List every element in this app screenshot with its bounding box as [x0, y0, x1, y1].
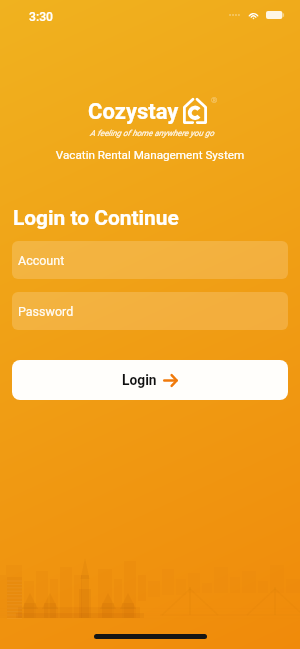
staticText: Login to Continue — [13, 206, 179, 230]
button[interactable]: Login — [12, 360, 288, 400]
staticText: Vacatin Rental Management System — [0, 148, 300, 162]
staticText: Password — [18, 304, 74, 319]
staticText: ® — [211, 96, 218, 105]
button[interactable]: Account — [12, 241, 288, 279]
staticText: Cozystay — [88, 99, 179, 125]
button[interactable]: Password — [12, 292, 288, 330]
staticText: A feeling of home anywhere you go — [2, 128, 300, 138]
staticText: Account — [18, 253, 65, 268]
staticText: 3:30 — [29, 10, 54, 24]
staticText: Login — [122, 372, 157, 388]
